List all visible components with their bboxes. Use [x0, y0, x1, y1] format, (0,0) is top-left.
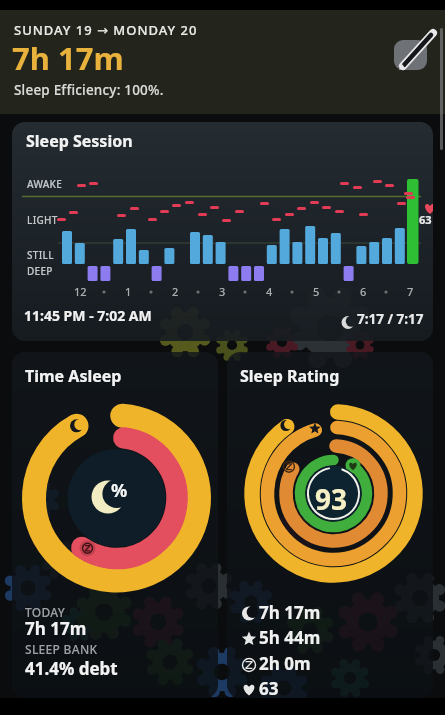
staticText: TODAY [25, 604, 66, 620]
staticText: Sleep Efficiency: 100%. [14, 81, 164, 99]
staticText: 7:17 / 7:17 [357, 310, 424, 328]
staticText: 41.4% debt [25, 657, 118, 680]
staticText: 93 [315, 480, 348, 518]
staticText: 6 [360, 284, 367, 299]
staticText: % [111, 478, 128, 503]
staticText: 1 [125, 284, 132, 299]
button[interactable]: Sleep Rating [227, 352, 433, 698]
staticText: 3 [219, 284, 226, 299]
button[interactable] [394, 40, 427, 70]
staticText: 7h 17m [259, 601, 321, 624]
staticText: Sleep Session [26, 130, 133, 152]
staticText: 5h 44m [259, 626, 321, 649]
staticText: 11:45 PM - 7:02 AM [24, 306, 152, 325]
staticText: 4 [266, 284, 273, 299]
staticText: 7 [407, 284, 414, 299]
staticText: STILL [27, 248, 54, 262]
button[interactable]: Time Asleep [12, 352, 218, 698]
staticText: 63 [259, 677, 279, 698]
staticText: SUNDAY 19 → MONDAY 20 [14, 21, 198, 39]
staticText: Sleep Rating [240, 365, 340, 387]
staticText: 7h 17m [25, 617, 87, 640]
staticText: 12 [74, 284, 87, 299]
staticText: LIGHT [27, 213, 58, 227]
staticText: Time Asleep [25, 365, 122, 387]
staticText: 2h 0m [259, 652, 311, 675]
staticText: AWAKE [27, 177, 63, 191]
staticText: 2 [172, 284, 179, 299]
staticText: 63 [419, 212, 432, 227]
staticText: 7h 17m [12, 37, 124, 79]
staticText: 5 [313, 284, 320, 299]
staticText: SLEEP BANK [25, 641, 98, 657]
button[interactable]: Sleep Session [12, 122, 433, 341]
staticText: DEEP [27, 264, 53, 278]
